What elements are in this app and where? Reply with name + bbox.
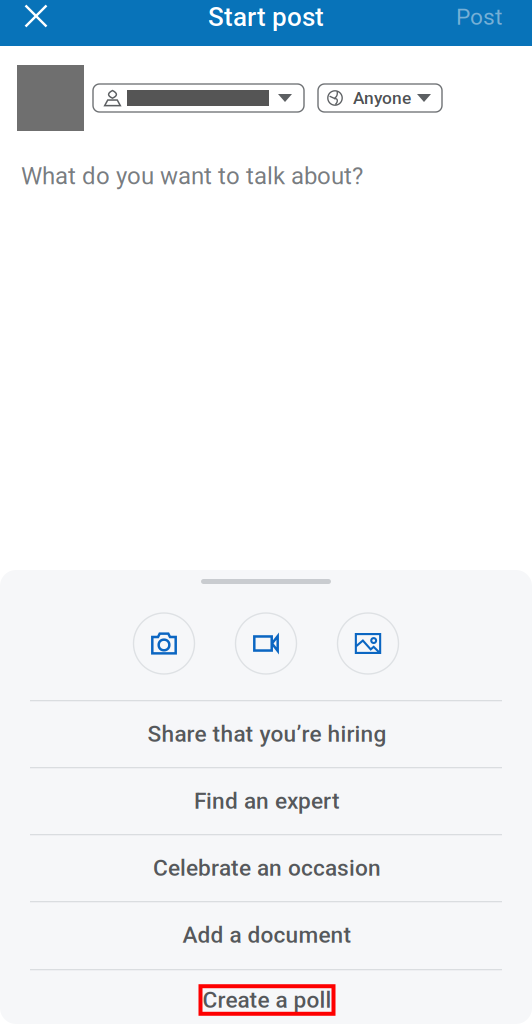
button[interactable]: Add a photo (337, 613, 398, 674)
button[interactable]: Find an expert (0, 767, 532, 834)
staticText: Start post (208, 2, 324, 32)
staticText: Anyone (353, 88, 411, 108)
button[interactable]: Anyone (318, 84, 442, 112)
staticText: Post (456, 4, 502, 30)
staticText: Create a poll (202, 987, 331, 1013)
button[interactable]: Create a poll (0, 969, 532, 1023)
button[interactable]: Record a video (235, 613, 296, 674)
staticText: Celebrate an occasion (153, 855, 381, 881)
button[interactable]: Post (438, 0, 502, 37)
button[interactable]: Close (8, 0, 64, 39)
staticText: What do you want to talk about? (21, 162, 363, 190)
button[interactable]: Share that you’re hiring (0, 700, 532, 767)
button[interactable]: Celebrate an occasion (0, 834, 532, 901)
button[interactable]: Take a photo (133, 613, 194, 674)
staticText: Add a document (182, 922, 351, 948)
staticText: Find an expert (194, 788, 340, 814)
button[interactable]: Select author (93, 84, 304, 112)
staticText: Share that you’re hiring (147, 721, 386, 747)
button[interactable]: Add a document (0, 901, 532, 969)
